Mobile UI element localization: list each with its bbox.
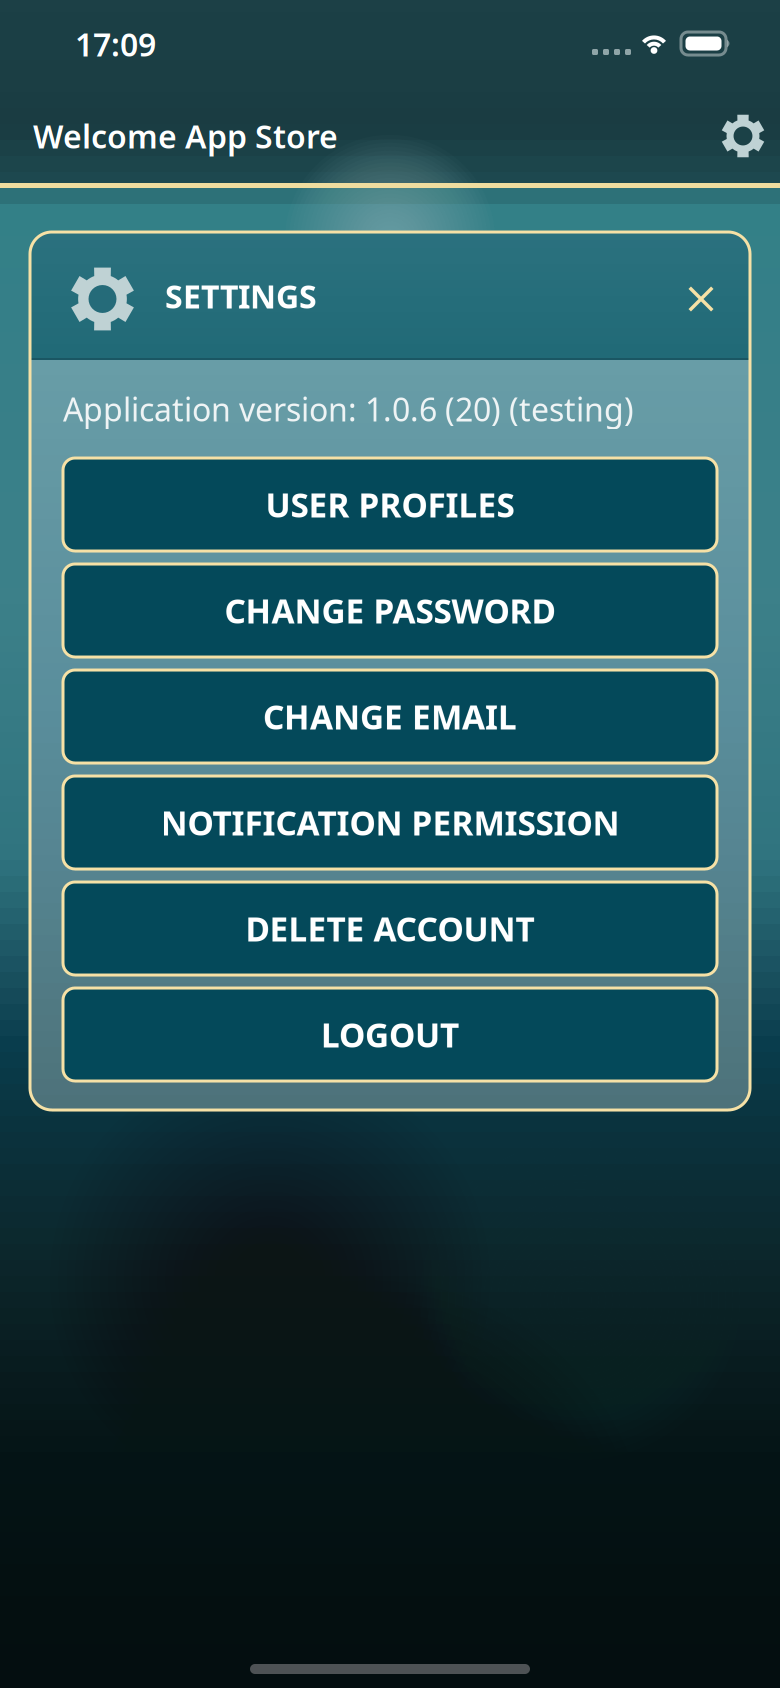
staticText: Application version: 1.0.6 (20) (testing…	[63, 388, 634, 430]
staticText: DELETE ACCOUNT	[245, 906, 534, 951]
button[interactable]: USER PROFILES	[63, 458, 717, 551]
staticText: NOTIFICATION PERMISSION	[160, 800, 619, 845]
button[interactable]: LOGOUT	[63, 988, 717, 1081]
button[interactable]: DELETE ACCOUNT	[63, 882, 717, 975]
button[interactable]: Close	[669, 261, 733, 331]
button[interactable]: CHANGE PASSWORD	[63, 564, 717, 657]
staticText: CHANGE PASSWORD	[224, 588, 555, 633]
staticText: Welcome App Store	[33, 115, 338, 157]
staticText: SETTINGS	[165, 275, 317, 317]
button[interactable]: CHANGE EMAIL	[63, 670, 717, 763]
button[interactable]: Settings	[709, 102, 777, 170]
button[interactable]: NOTIFICATION PERMISSION	[63, 776, 717, 869]
staticText: 17:09	[75, 23, 156, 65]
staticText: LOGOUT	[321, 1012, 459, 1057]
staticText: USER PROFILES	[265, 482, 514, 527]
staticText: CHANGE EMAIL	[263, 694, 517, 739]
